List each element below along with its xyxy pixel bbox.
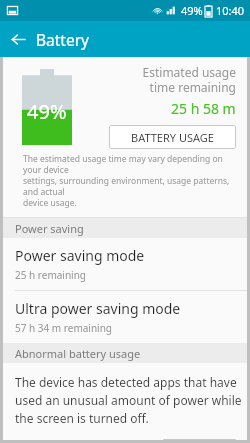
- staticText: Power saving: [15, 221, 84, 236]
- button[interactable]: Ultra power saving mode: [3, 291, 247, 343]
- staticText: 57 h 34 m remaining: [15, 321, 113, 335]
- staticText: Abnormal battery usage: [15, 346, 141, 361]
- staticText: The device has detected apps that have u…: [15, 374, 242, 427]
- staticText: 10:40: [216, 3, 245, 18]
- staticText: Battery: [36, 29, 90, 50]
- staticText: Estimated usage time remaining: [142, 64, 236, 95]
- button[interactable]: BATTERY USAGE: [109, 125, 236, 149]
- staticText: 25 h remaining: [15, 268, 87, 282]
- staticText: 49%: [27, 98, 67, 125]
- staticText: Ultra power saving mode: [15, 299, 181, 318]
- button[interactable]: Power saving mode: [3, 238, 247, 290]
- staticText: BATTERY USAGE: [131, 130, 214, 145]
- staticText: 25 h 58 m: [171, 99, 236, 118]
- staticText: Power saving mode: [15, 246, 145, 265]
- staticText: 49%: [181, 3, 203, 18]
- button[interactable]: Navigate up: [0, 21, 36, 57]
- staticText: The estimated usage time may vary depend…: [23, 153, 237, 208]
